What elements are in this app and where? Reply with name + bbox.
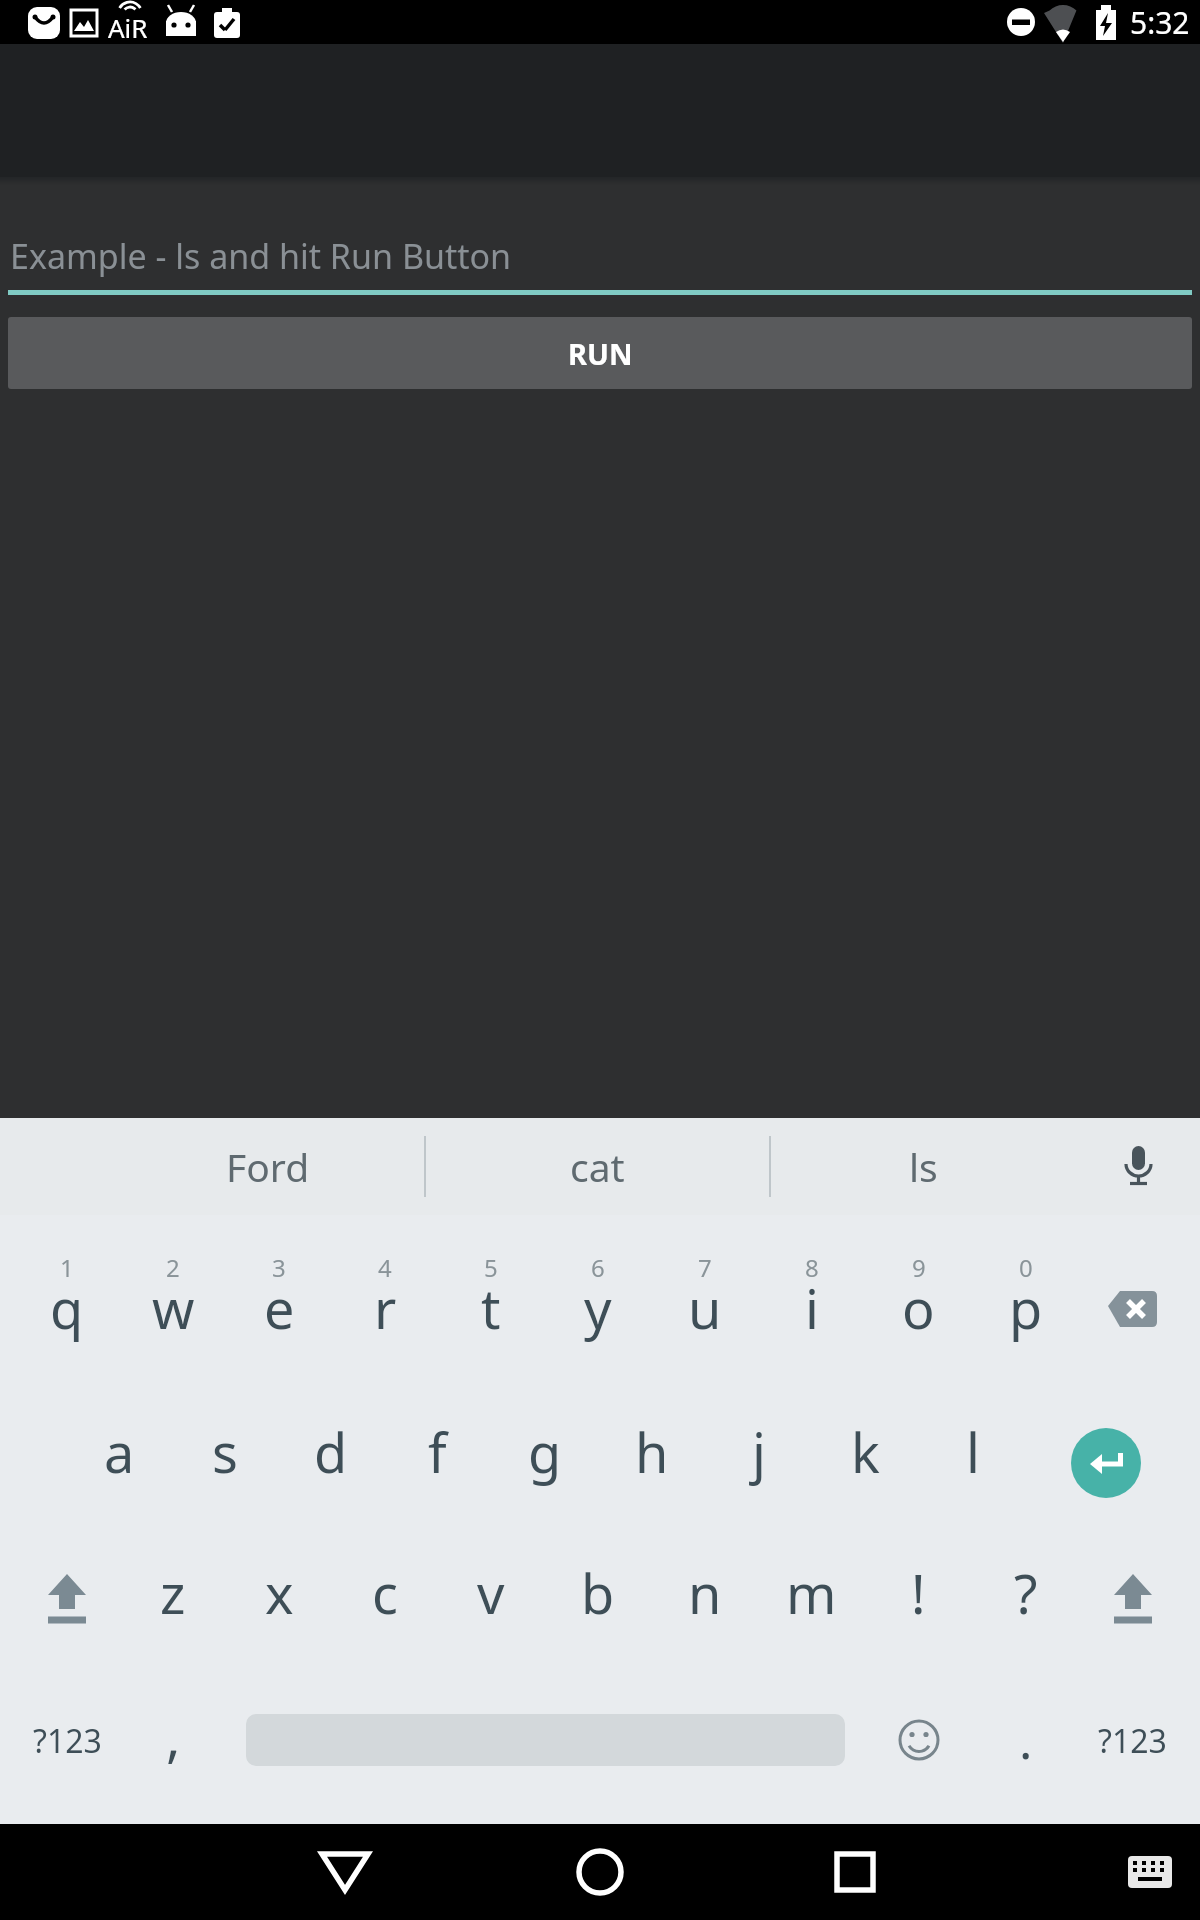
staticText: n — [688, 1556, 722, 1630]
staticText: ?123 — [1098, 1719, 1167, 1763]
button[interactable] — [14, 1529, 120, 1669]
staticText: 7 — [698, 1251, 712, 1284]
button[interactable]: z — [120, 1529, 226, 1669]
button[interactable]: 4 — [332, 1215, 438, 1386]
button[interactable]: k — [812, 1386, 919, 1529]
staticText: s — [212, 1415, 238, 1489]
button[interactable]: 1 — [14, 1215, 120, 1386]
staticText: b — [581, 1556, 615, 1630]
staticText: r — [374, 1271, 397, 1345]
staticText: 0 — [1019, 1251, 1033, 1284]
staticText: f — [428, 1415, 447, 1489]
button[interactable]: l — [919, 1386, 1026, 1529]
staticText: x — [265, 1556, 294, 1630]
staticText: i — [805, 1271, 819, 1345]
button[interactable]: f — [384, 1386, 491, 1529]
button[interactable]: Ford — [112, 1118, 424, 1215]
staticText: o — [902, 1271, 935, 1345]
button[interactable]: j — [705, 1386, 812, 1529]
button[interactable]: d — [278, 1386, 384, 1529]
staticText: RUN — [568, 334, 633, 373]
button[interactable]: 0 — [972, 1215, 1079, 1386]
staticText: 6 — [591, 1251, 605, 1284]
button[interactable] — [1079, 1529, 1186, 1669]
staticText: p — [1009, 1271, 1043, 1345]
button[interactable]: b — [544, 1529, 651, 1669]
staticText: g — [528, 1415, 562, 1489]
staticText: Ford — [226, 1140, 310, 1193]
staticText: 4 — [378, 1251, 392, 1284]
button[interactable] — [400, 1824, 800, 1920]
staticText: 8 — [805, 1251, 819, 1284]
button[interactable] — [1026, 1386, 1186, 1529]
button[interactable]: 6 — [544, 1215, 651, 1386]
button[interactable]: 7 — [651, 1215, 758, 1386]
button[interactable]: h — [598, 1386, 705, 1529]
staticText: u — [688, 1271, 722, 1345]
button[interactable]: ? — [972, 1529, 1079, 1669]
button[interactable] — [1076, 1118, 1200, 1215]
button[interactable]: a — [66, 1386, 172, 1529]
button[interactable]: 5 — [438, 1215, 544, 1386]
button[interactable]: , — [120, 1669, 226, 1824]
staticText: y — [584, 1271, 612, 1345]
staticText: ? — [1014, 1556, 1038, 1630]
staticText: e — [264, 1271, 295, 1345]
staticText: j — [752, 1415, 766, 1489]
button[interactable] — [0, 1824, 400, 1920]
button[interactable]: ?123 — [1079, 1669, 1186, 1824]
staticText: h — [635, 1415, 669, 1489]
staticText: v — [477, 1556, 505, 1630]
staticText: 3 — [272, 1251, 286, 1284]
staticText: t — [481, 1271, 501, 1345]
button[interactable] — [226, 1669, 865, 1824]
button[interactable]: ! — [865, 1529, 972, 1669]
button[interactable]: . — [972, 1669, 1079, 1824]
button[interactable]: 2 — [120, 1215, 226, 1386]
button[interactable]: g — [491, 1386, 598, 1529]
button[interactable]: ls — [771, 1118, 1076, 1215]
button[interactable]: n — [651, 1529, 758, 1669]
staticText: ! — [911, 1556, 926, 1630]
button[interactable]: 9 — [865, 1215, 972, 1386]
button[interactable]: 3 — [226, 1215, 332, 1386]
staticText: 1 — [60, 1251, 74, 1284]
button[interactable]: ?123 — [14, 1669, 120, 1824]
staticText: 5:32 — [1130, 2, 1190, 43]
button[interactable]: Example - ls and hit Run Button — [8, 233, 1192, 295]
button[interactable]: c — [332, 1529, 438, 1669]
staticText: Example - ls and hit Run Button — [10, 233, 512, 279]
staticText: c — [372, 1556, 398, 1630]
staticText: 5 — [484, 1251, 498, 1284]
staticText: k — [851, 1415, 880, 1489]
staticText: d — [314, 1415, 348, 1489]
staticText: q — [50, 1271, 84, 1345]
button[interactable]: x — [226, 1529, 332, 1669]
button[interactable] — [865, 1669, 972, 1824]
staticText: . — [1019, 1706, 1033, 1774]
staticText: cat — [570, 1140, 625, 1193]
button[interactable]: RUN — [8, 317, 1192, 389]
staticText: AiR — [108, 10, 148, 44]
button[interactable] — [800, 1824, 1200, 1920]
button[interactable]: m — [758, 1529, 865, 1669]
button[interactable]: 8 — [758, 1215, 865, 1386]
staticText: a — [104, 1415, 135, 1489]
button[interactable]: cat — [426, 1118, 769, 1215]
staticText: w — [152, 1271, 195, 1345]
staticText: ?123 — [33, 1719, 102, 1763]
button[interactable] — [1079, 1215, 1186, 1386]
button[interactable]: s — [172, 1386, 278, 1529]
staticText: ls — [909, 1140, 938, 1193]
staticText: m — [786, 1556, 837, 1630]
staticText: 2 — [166, 1251, 180, 1284]
staticText: , — [166, 1699, 181, 1773]
staticText: l — [966, 1415, 980, 1489]
staticText: 9 — [912, 1251, 926, 1284]
staticText: z — [160, 1556, 186, 1630]
button[interactable]: v — [438, 1529, 544, 1669]
